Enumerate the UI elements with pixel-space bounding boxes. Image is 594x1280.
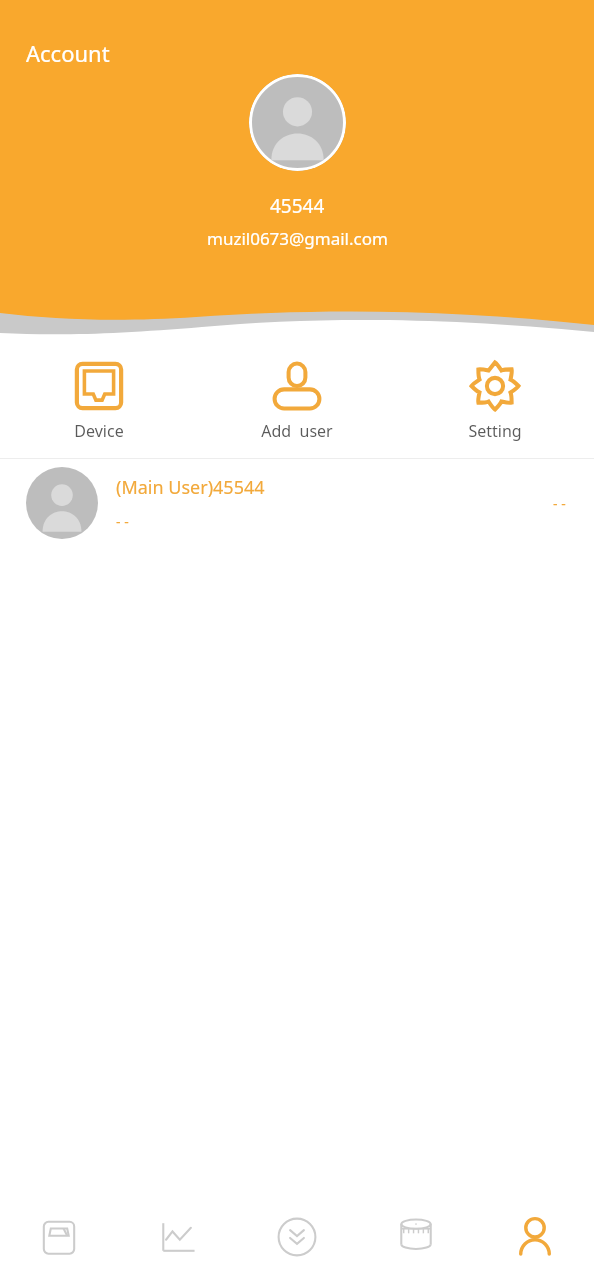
- button[interactable]: Scale: [0, 1194, 118, 1280]
- button[interactable]: Download: [237, 1194, 356, 1280]
- staticText: Setting: [468, 420, 522, 442]
- button[interactable]: Profile photo: [249, 74, 346, 171]
- staticText: - -: [116, 512, 129, 531]
- button[interactable]: Trend: [118, 1194, 237, 1280]
- button[interactable]: Device: [0, 348, 198, 442]
- button[interactable]: Account: [475, 1194, 594, 1280]
- staticText: muzil0673@gmail.com: [207, 227, 388, 250]
- button[interactable]: Add user: [198, 348, 396, 442]
- staticText: Device: [74, 420, 124, 442]
- button[interactable]: Setting: [396, 348, 594, 442]
- staticText: (Main User)45544: [116, 475, 265, 500]
- button[interactable]: Measure: [356, 1194, 475, 1280]
- button[interactable]: (Main User)45544: [0, 459, 594, 547]
- staticText: Add user: [261, 420, 333, 442]
- staticText: Account: [26, 38, 110, 68]
- staticText: - -: [553, 494, 566, 513]
- staticText: 45544: [270, 193, 325, 219]
